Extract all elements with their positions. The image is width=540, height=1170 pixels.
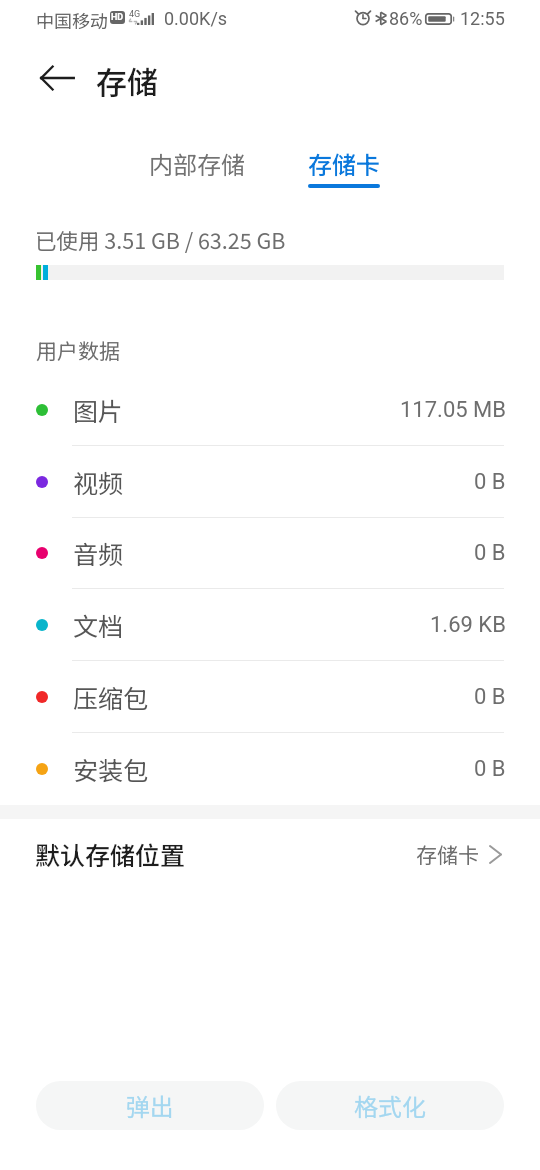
- staticText: 0 B: [474, 469, 506, 495]
- staticText: 音频: [73, 535, 124, 571]
- staticText: 1.69 KB: [430, 612, 506, 638]
- button[interactable]: 内部存储: [127, 137, 267, 187]
- staticText: 0 B: [474, 540, 506, 566]
- staticText: 12:55: [460, 8, 505, 29]
- button[interactable]: 安装包: [0, 733, 540, 805]
- button[interactable]: Back: [28, 49, 86, 107]
- staticText: 0 B: [474, 684, 506, 710]
- button[interactable]: 压缩包: [0, 661, 540, 733]
- button[interactable]: 视频: [0, 446, 540, 518]
- staticText: 弹出: [126, 1088, 174, 1123]
- button[interactable]: 弹出: [36, 1081, 264, 1130]
- staticText: 内部存储: [149, 146, 245, 181]
- staticText: 压缩包: [73, 679, 149, 715]
- staticText: 中国移动: [36, 7, 108, 33]
- staticText: 文档: [73, 607, 124, 643]
- button[interactable]: 存储卡: [287, 137, 400, 187]
- staticText: 格式化: [354, 1088, 426, 1123]
- button[interactable]: 默认存储位置: [0, 818, 540, 890]
- staticText: 已使用 3.51 GB / 63.25 GB: [35, 224, 286, 255]
- staticText: 117.05 MB: [400, 397, 506, 423]
- staticText: 视频: [73, 464, 124, 500]
- staticText: 86%: [389, 8, 423, 29]
- staticText: 图片: [73, 392, 124, 428]
- staticText: 用户数据: [36, 335, 120, 365]
- staticText: 0.00K/s: [164, 8, 228, 29]
- staticText: 默认存储位置: [35, 836, 186, 872]
- button[interactable]: 格式化: [276, 1081, 504, 1130]
- button[interactable]: 文档: [0, 589, 540, 661]
- staticText: 存储卡: [416, 839, 479, 869]
- button[interactable]: 图片: [0, 374, 540, 446]
- staticText: 存储: [96, 58, 158, 103]
- button[interactable]: 音频: [0, 517, 540, 589]
- staticText: 安装包: [73, 751, 149, 787]
- staticText: HD: [111, 12, 124, 23]
- staticText: 0 B: [474, 756, 506, 782]
- staticText: 存储卡: [308, 146, 380, 181]
- staticText: 4G: [129, 9, 141, 20]
